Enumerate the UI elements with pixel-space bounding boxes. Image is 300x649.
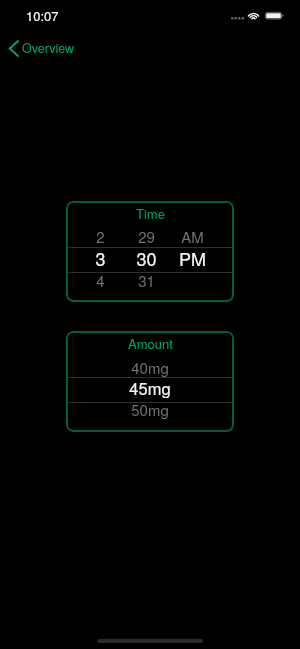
staticText: 45mg [129, 376, 171, 398]
staticText: 50mg [131, 399, 169, 420]
staticText: 2 [96, 226, 105, 247]
staticText: 31 [138, 270, 155, 291]
staticText: 3 [95, 245, 106, 267]
staticText: 40mg [131, 357, 169, 378]
staticText: 29 [138, 226, 155, 247]
staticText: 10:07 [26, 6, 59, 25]
staticText: Amount [128, 334, 173, 353]
staticText: 4 [96, 270, 105, 291]
staticText: 30 [136, 245, 157, 267]
staticText: Time [136, 204, 165, 223]
button[interactable]: Time [66, 201, 234, 302]
button[interactable]: Back to Overview [6, 37, 78, 59]
staticText: Overview [22, 39, 75, 57]
staticText: PM [179, 245, 206, 267]
staticText: AM [181, 226, 204, 247]
button[interactable]: Amount [66, 331, 234, 432]
